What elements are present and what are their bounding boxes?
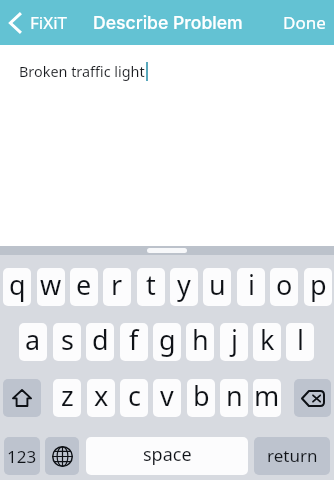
staticText: j xyxy=(231,323,238,358)
button[interactable]: Shift xyxy=(3,379,41,417)
staticText: a xyxy=(25,323,41,358)
button[interactable]: d xyxy=(86,323,114,361)
staticText: d xyxy=(92,323,109,358)
button[interactable]: e xyxy=(70,268,98,306)
staticText: c xyxy=(128,379,141,414)
staticText: z xyxy=(61,379,74,414)
staticText: t xyxy=(146,268,156,303)
button[interactable]: Done xyxy=(274,11,334,34)
button[interactable]: n xyxy=(220,379,248,417)
button[interactable]: x xyxy=(87,379,115,417)
staticText: Done xyxy=(283,11,326,34)
button[interactable]: space xyxy=(86,437,248,475)
staticText: f xyxy=(129,323,139,358)
staticText: FiXiT xyxy=(30,11,68,34)
staticText: l xyxy=(297,323,304,358)
button[interactable]: 123 xyxy=(4,437,40,475)
button[interactable]: t xyxy=(137,268,165,306)
staticText: Describe Problem xyxy=(93,12,243,33)
button[interactable]: j xyxy=(220,323,248,361)
button[interactable]: v xyxy=(153,379,181,417)
button[interactable]: z xyxy=(53,379,81,417)
staticText: q xyxy=(9,268,26,303)
button[interactable]: q xyxy=(3,268,31,306)
button[interactable]: l xyxy=(286,323,314,361)
button[interactable]: k xyxy=(253,323,281,361)
button[interactable]: r xyxy=(103,268,131,306)
staticText: p xyxy=(310,268,327,303)
staticText: v xyxy=(160,379,174,414)
staticText: m xyxy=(254,379,280,414)
staticText: n xyxy=(226,379,243,414)
button[interactable]: f xyxy=(120,323,148,361)
button[interactable]: g xyxy=(153,323,181,361)
staticText: i xyxy=(248,268,255,303)
button[interactable]: w xyxy=(37,268,65,306)
button[interactable]: b xyxy=(187,379,215,417)
staticText: k xyxy=(260,323,275,358)
staticText: y xyxy=(177,268,191,303)
button[interactable]: Backspace xyxy=(294,379,331,417)
button[interactable]: o xyxy=(270,268,298,306)
button[interactable]: y xyxy=(170,268,198,306)
button[interactable]: h xyxy=(186,323,214,361)
button[interactable]: Switch keyboard language xyxy=(45,437,79,475)
staticText: r xyxy=(111,268,123,303)
staticText: w xyxy=(40,268,62,303)
button[interactable]: a xyxy=(19,323,47,361)
button[interactable]: m xyxy=(253,379,281,417)
button[interactable]: p xyxy=(304,268,332,306)
staticText: 123 xyxy=(7,445,37,468)
staticText: x xyxy=(94,379,109,414)
staticText: h xyxy=(192,323,209,358)
staticText: o xyxy=(276,268,293,303)
button[interactable]: c xyxy=(120,379,148,417)
staticText: e xyxy=(76,268,92,303)
button[interactable]: return xyxy=(254,437,330,475)
staticText: s xyxy=(61,323,74,358)
staticText: space xyxy=(143,442,192,467)
button[interactable]: s xyxy=(53,323,81,361)
button[interactable]: i xyxy=(237,268,265,306)
staticText: u xyxy=(209,268,226,303)
button[interactable]: FiXiT xyxy=(0,11,66,34)
staticText: return xyxy=(267,444,318,467)
staticText: g xyxy=(159,323,176,358)
button[interactable]: u xyxy=(203,268,231,306)
staticText: Broken traffic light xyxy=(19,62,145,82)
staticText: b xyxy=(193,379,210,414)
